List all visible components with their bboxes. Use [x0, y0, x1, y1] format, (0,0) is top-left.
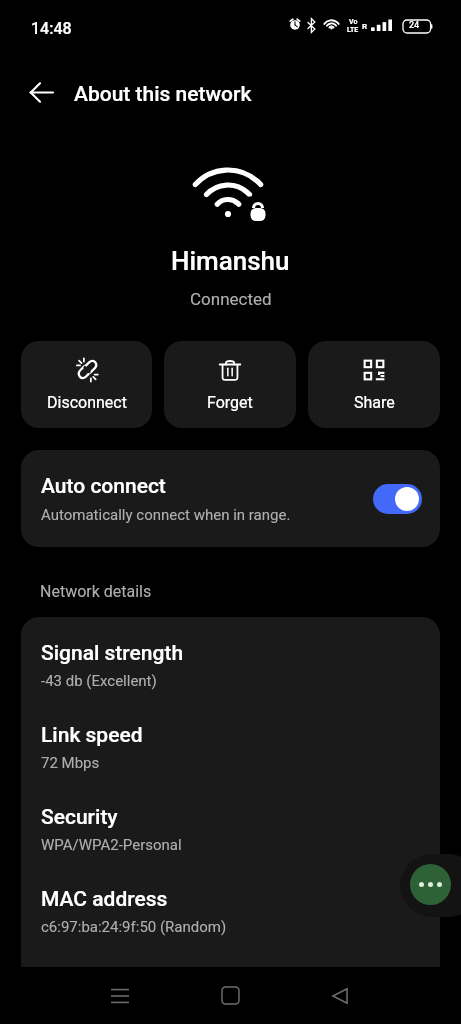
staticText: MAC address — [41, 887, 168, 912]
staticText: LTE — [347, 26, 359, 34]
button[interactable]: Recent apps — [92, 974, 148, 1017]
staticText: Network details — [40, 582, 152, 601]
staticText: Forget — [207, 393, 253, 412]
staticText: Share — [354, 393, 395, 412]
staticText: Connected — [190, 289, 272, 309]
staticText: Security — [41, 805, 118, 830]
staticText: WPA/WPA2-Personal — [41, 836, 182, 854]
staticText: Himanshu — [171, 246, 290, 276]
staticText: 72 Mbps — [41, 754, 100, 772]
staticText: Vo — [349, 18, 358, 26]
staticText: R — [362, 22, 368, 31]
staticText: Disconnect — [47, 393, 127, 412]
button[interactable]: More options — [400, 854, 461, 917]
staticText: Automatically connect when in range. — [41, 506, 291, 524]
button[interactable]: Forget — [164, 341, 296, 428]
button[interactable]: Share — [308, 341, 440, 428]
button[interactable]: Back — [312, 974, 368, 1017]
staticText: c6:97:ba:24:9f:50 (Random) — [41, 918, 227, 936]
staticText: Signal strength — [41, 641, 184, 666]
button[interactable]: Home — [202, 974, 258, 1017]
staticText: -43 db (Excellent) — [41, 672, 157, 690]
staticText: 24 — [409, 20, 420, 31]
button[interactable]: Back — [19, 70, 63, 114]
staticText: Link speed — [41, 723, 143, 748]
staticText: Auto connect — [41, 474, 166, 499]
button[interactable]: Auto connect — [21, 450, 440, 547]
button[interactable]: Disconnect — [21, 341, 152, 428]
staticText: About this network — [74, 82, 252, 107]
staticText: 14:48 — [31, 19, 72, 38]
